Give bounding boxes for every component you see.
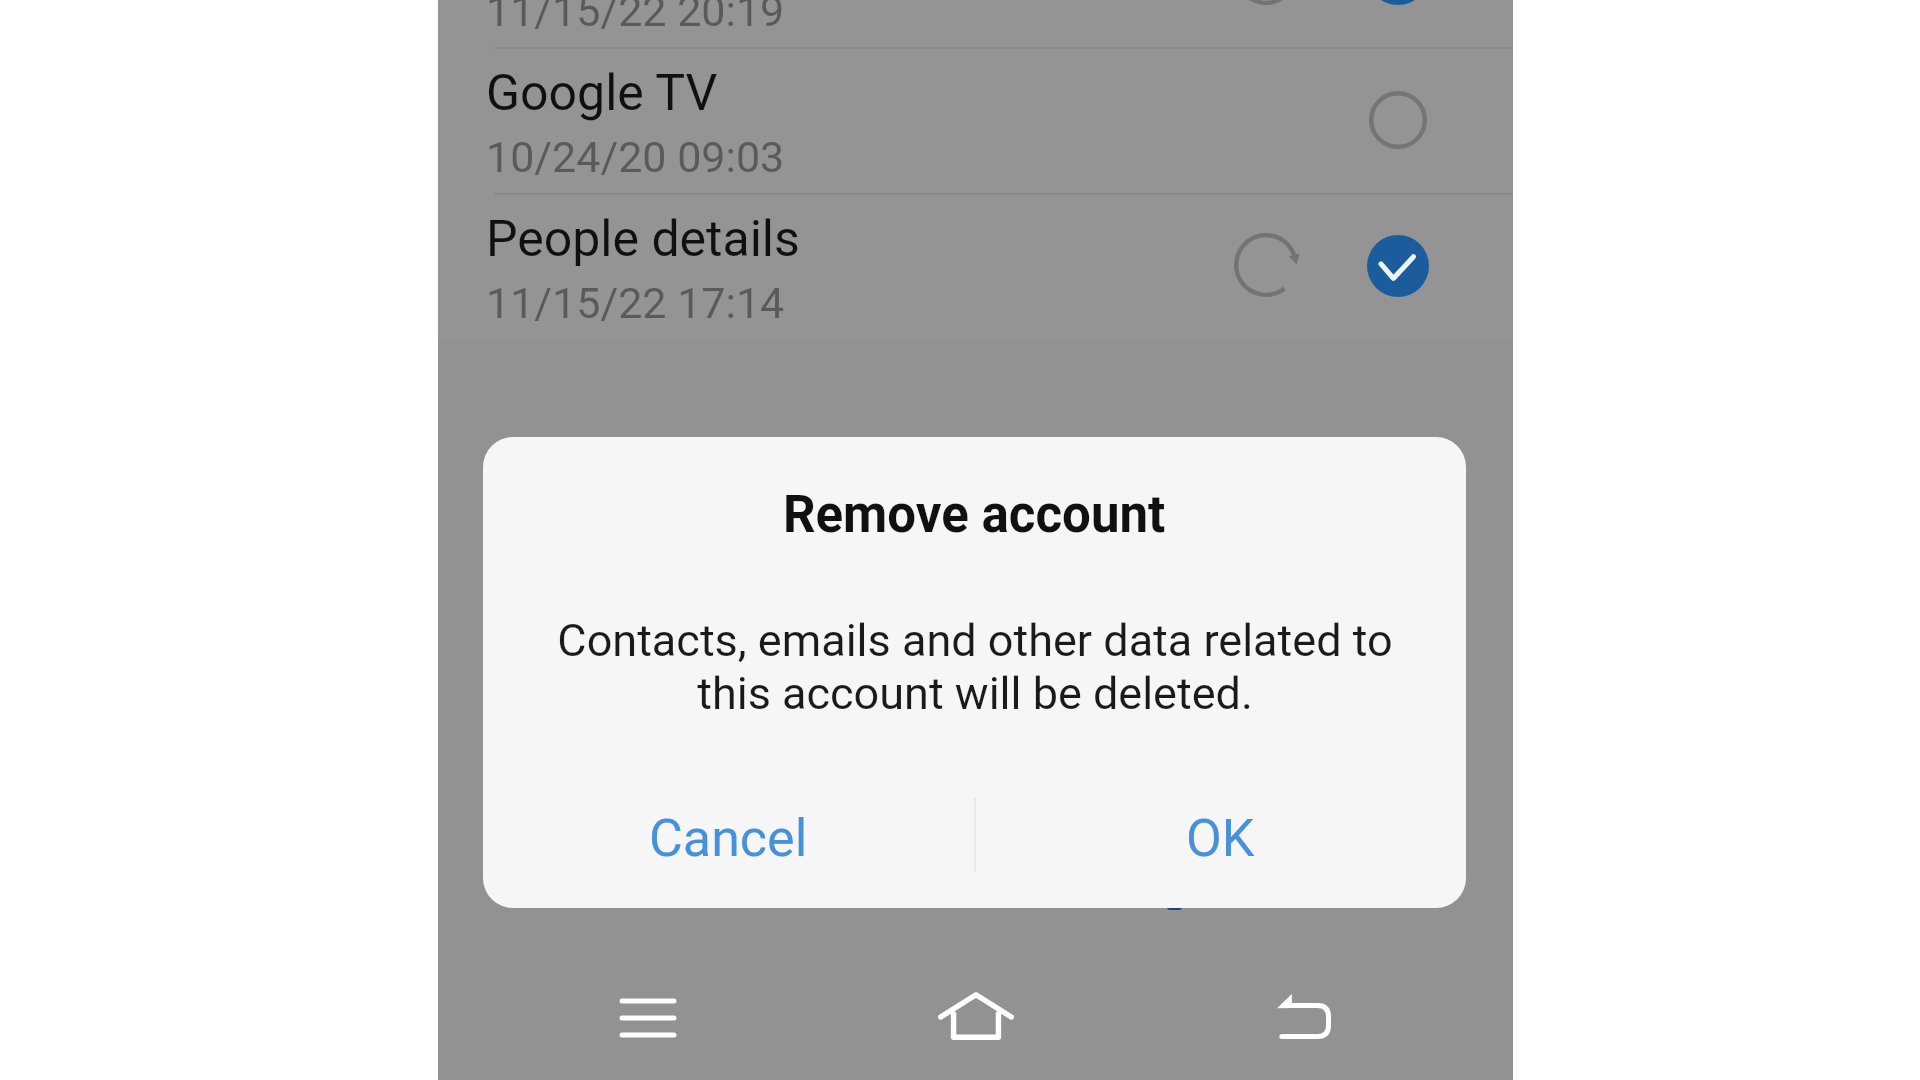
button[interactable]: Selected [1365,0,1431,7]
button[interactable]: Selected [1365,233,1431,299]
button[interactable]: Home [931,971,1021,1061]
staticText: Remove account [783,485,1166,545]
staticText: 11/15/22 20:19 [486,0,785,36]
button[interactable]: Recent apps [603,973,693,1063]
staticText: 10/24/20 09:03 [486,132,785,182]
staticText: OK [1186,808,1255,869]
button[interactable]: Not selected [1365,87,1431,153]
staticText: Google TV [486,64,718,123]
button[interactable]: Back [1259,971,1349,1061]
button[interactable]: OK [974,778,1466,901]
staticText: Cancel [649,808,808,869]
button[interactable]: Google TV [438,47,1513,193]
button[interactable]: Sync now [1233,232,1299,298]
staticText: 11/15/22 17:14 [486,278,785,328]
staticText: Contacts, emails and other data related … [545,614,1405,720]
staticText: People details [486,210,800,269]
button[interactable]: Gmail [438,0,1513,47]
button[interactable]: Cancel [483,778,974,901]
button[interactable]: Sync now [1233,0,1299,6]
button[interactable]: People details [438,193,1513,339]
